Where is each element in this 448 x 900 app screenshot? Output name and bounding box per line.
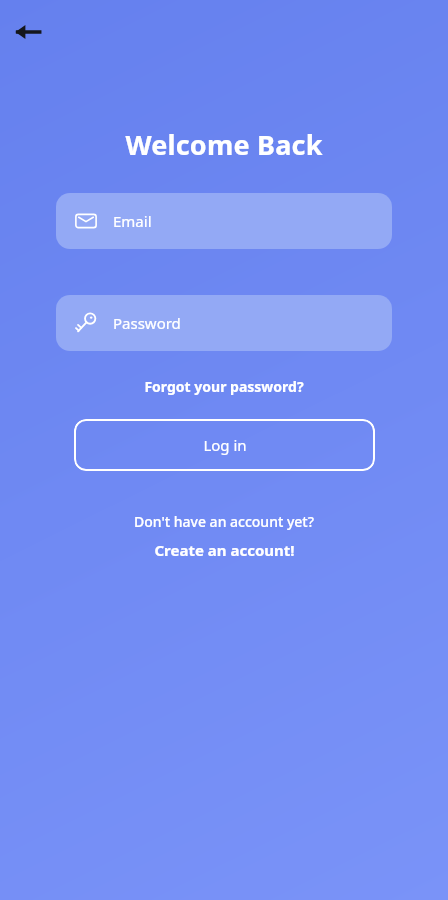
button[interactable]: Forgot your password? <box>136 373 312 400</box>
button[interactable]: Log in <box>74 419 375 471</box>
button[interactable]: Don't have an account yet? <box>126 509 322 534</box>
staticText: Password <box>113 313 181 333</box>
button[interactable]: Create an account! <box>146 537 303 563</box>
staticText: Log in <box>203 435 247 455</box>
staticText: Don't have an account yet? <box>134 512 314 531</box>
button[interactable]: Password field <box>56 295 392 351</box>
staticText: Welcome Back <box>125 126 323 163</box>
staticText: Forgot your password? <box>144 377 304 396</box>
staticText: Create an account! <box>154 540 295 560</box>
button[interactable]: Email field <box>56 193 392 249</box>
button[interactable]: Back <box>6 10 50 54</box>
staticText: Email <box>113 211 152 231</box>
